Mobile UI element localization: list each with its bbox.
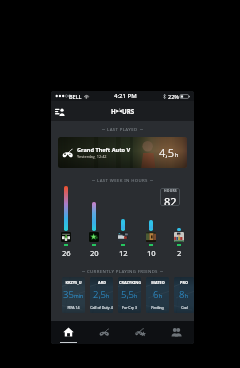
- staticText: 8: [179, 288, 185, 301]
- staticText: Yesterday, 12:42: [77, 154, 107, 159]
- button[interactable]: 10: [142, 185, 160, 257]
- staticText: h: [159, 293, 163, 300]
- button[interactable]: MATEO: [146, 277, 169, 313]
- staticText: 22%: [168, 93, 179, 100]
- staticText: 2: [177, 248, 182, 257]
- staticText: 4,5: [159, 145, 175, 160]
- staticText: KRZYS_U: [65, 280, 82, 285]
- staticText: 10: [147, 248, 156, 257]
- staticText: 12: [119, 248, 128, 257]
- staticText: MATEO: [151, 280, 165, 285]
- button[interactable]: KRZYS_U: [62, 277, 85, 313]
- staticText: 2,5: [93, 288, 106, 301]
- staticText: ARD: [98, 280, 106, 285]
- staticText: BELL: [69, 93, 82, 100]
- staticText: FIFA 14: [67, 305, 80, 310]
- button[interactable]: HOURS: [160, 188, 180, 206]
- staticText: URS: [122, 107, 135, 115]
- staticText: H: [111, 107, 116, 115]
- staticText: 4:21 PM: [114, 92, 137, 100]
- staticText: Call of Duty 4: [90, 305, 113, 310]
- staticText: 5,5: [121, 288, 134, 301]
- button[interactable]: 26: [57, 185, 75, 257]
- staticText: min: [74, 293, 84, 300]
- button[interactable]: 20: [85, 185, 103, 257]
- staticText: 35: [63, 288, 74, 301]
- button[interactable]: Favourites: [122, 321, 158, 344]
- button[interactable]: ARD: [90, 277, 113, 313]
- button[interactable]: 12: [114, 185, 132, 257]
- staticText: PRO: [180, 280, 188, 285]
- button[interactable]: Games: [86, 321, 122, 344]
- staticText: h: [185, 293, 189, 300]
- button[interactable]: PRO: [174, 277, 194, 313]
- button[interactable]: Leaderboard: [53, 105, 66, 118]
- staticText: h: [175, 151, 179, 158]
- button[interactable]: Home: [51, 321, 86, 344]
- staticText: 82: [164, 194, 177, 206]
- staticText: HOURS: [164, 188, 177, 193]
- staticText: LAST PLAYED: [107, 126, 138, 132]
- staticText: Finding NEMO: [146, 305, 169, 310]
- staticText: CRAZYKING: [119, 280, 141, 285]
- staticText: h: [134, 293, 138, 300]
- staticText: 20: [90, 248, 99, 257]
- button[interactable]: Friends: [158, 321, 194, 344]
- button[interactable]: Grand Theft Auto V: [58, 137, 187, 168]
- button[interactable]: 2: [170, 185, 188, 257]
- staticText: LAST WEEK IN HOURS: [97, 177, 148, 183]
- staticText: Far Cry 3: [122, 305, 137, 310]
- staticText: CURRENTLY PLAYING FRIENDS: [87, 268, 158, 274]
- staticText: h: [106, 293, 110, 300]
- staticText: 26: [62, 248, 71, 257]
- button[interactable]: CRAZYKING: [118, 277, 141, 313]
- staticText: 6: [153, 288, 159, 301]
- staticText: Cod: [181, 305, 188, 310]
- staticText: Grand Theft Auto V: [77, 146, 131, 154]
